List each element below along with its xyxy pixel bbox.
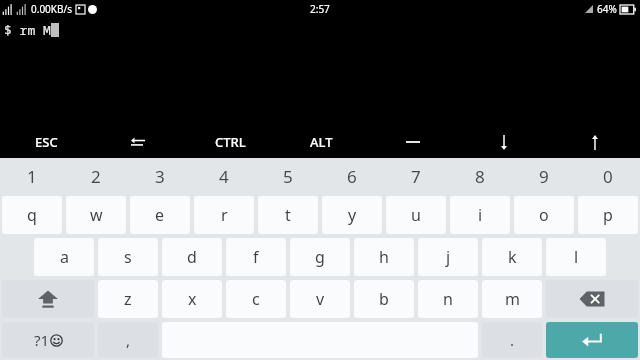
staticText: 1 [27, 165, 37, 188]
staticText: g [315, 246, 325, 268]
button[interactable]: b [354, 280, 414, 318]
button[interactable]: 5 [256, 158, 320, 194]
staticText: 0.00KB/s [31, 2, 73, 16]
button[interactable]: ALT [276, 126, 367, 158]
button[interactable]: v [290, 280, 350, 318]
staticText: d [187, 246, 197, 268]
staticText: . [510, 330, 515, 350]
staticText: 2:57 [310, 2, 330, 16]
staticText: 2 [91, 165, 101, 188]
button[interactable]: g [290, 238, 350, 276]
button[interactable]: 1 [0, 158, 64, 194]
button[interactable]: ?1 [2, 322, 94, 358]
button[interactable]: p [578, 196, 638, 234]
button[interactable]: w [66, 196, 126, 234]
staticText: u [411, 204, 421, 226]
staticText: 5 [283, 165, 293, 188]
button[interactable]: . [482, 322, 542, 358]
button[interactable]: k [482, 238, 542, 276]
staticText: n [443, 288, 453, 310]
button[interactable]: a [34, 238, 94, 276]
staticText: ESC [35, 133, 58, 151]
button[interactable]: 3 [128, 158, 192, 194]
staticText: x [188, 288, 197, 310]
button[interactable]: Enter [546, 322, 638, 358]
staticText: t [285, 204, 291, 226]
button[interactable]: 7 [384, 158, 448, 194]
button[interactable]: Minus [367, 126, 458, 158]
button[interactable]: l [546, 238, 606, 276]
staticText: $ rm M [4, 21, 51, 39]
staticText: c [252, 288, 260, 310]
button[interactable]: 9 [512, 158, 576, 194]
button[interactable]: i [450, 196, 510, 234]
button[interactable]: n [418, 280, 478, 318]
staticText: e [155, 204, 165, 226]
staticText: 4 [219, 165, 229, 188]
button[interactable]: Arrow up [549, 126, 640, 158]
staticText: s [124, 246, 132, 268]
button[interactable]: d [162, 238, 222, 276]
staticText: a [60, 246, 69, 268]
staticText: l [574, 246, 579, 268]
button[interactable]: Tab [92, 126, 184, 158]
staticText: m [505, 288, 520, 310]
button[interactable]: q [2, 196, 62, 234]
staticText: 8 [475, 165, 485, 188]
button[interactable]: u [386, 196, 446, 234]
button[interactable]: 6 [320, 158, 384, 194]
button[interactable]: e [130, 196, 190, 234]
button[interactable]: h [354, 238, 414, 276]
staticText: r [221, 204, 228, 226]
button[interactable]: r [194, 196, 254, 234]
staticText: ?1 [34, 330, 50, 350]
staticText: y [348, 204, 357, 226]
staticText: z [124, 288, 132, 310]
staticText: 0 [603, 165, 613, 188]
staticText: 3 [155, 165, 165, 188]
staticText: 7 [411, 165, 421, 188]
button[interactable]: s [98, 238, 158, 276]
button[interactable]: z [98, 280, 158, 318]
button[interactable]: Shift [2, 280, 94, 318]
button[interactable]: y [322, 196, 382, 234]
staticText: j [446, 246, 451, 268]
button[interactable]: CTRL [184, 126, 276, 158]
staticText: w [90, 204, 103, 226]
staticText: ALT [310, 133, 333, 151]
button[interactable]: j [418, 238, 478, 276]
staticText: 9 [539, 165, 549, 188]
button[interactable]: c [226, 280, 286, 318]
staticText: 6 [347, 165, 357, 188]
button[interactable]: 8 [448, 158, 512, 194]
staticText: h [379, 246, 389, 268]
button[interactable]: ESC [0, 126, 92, 158]
staticText: q [27, 204, 37, 226]
button[interactable]: o [514, 196, 574, 234]
other: Arrow down [499, 135, 509, 150]
button[interactable]: 4 [192, 158, 256, 194]
button[interactable]: t [258, 196, 318, 234]
staticText: p [603, 204, 613, 226]
other: Tab [131, 137, 145, 148]
staticText: b [379, 288, 389, 310]
button[interactable]: Arrow down [458, 126, 549, 158]
staticText: CTRL [215, 133, 246, 151]
other: Arrow up [590, 135, 600, 150]
staticText: 64% [597, 2, 617, 16]
staticText: i [478, 204, 483, 226]
button[interactable]: 0 [576, 158, 640, 194]
staticText: f [253, 246, 259, 268]
staticText: o [539, 204, 549, 226]
button[interactable]: Backspace [546, 280, 638, 318]
button[interactable]: , [98, 322, 158, 358]
button[interactable]: m [482, 280, 542, 318]
button[interactable]: f [226, 238, 286, 276]
staticText: k [508, 246, 517, 268]
staticText: v [316, 288, 325, 310]
button[interactable]: x [162, 280, 222, 318]
other: Minus [406, 137, 420, 147]
button[interactable]: 2 [64, 158, 128, 194]
staticText: , [126, 330, 131, 350]
